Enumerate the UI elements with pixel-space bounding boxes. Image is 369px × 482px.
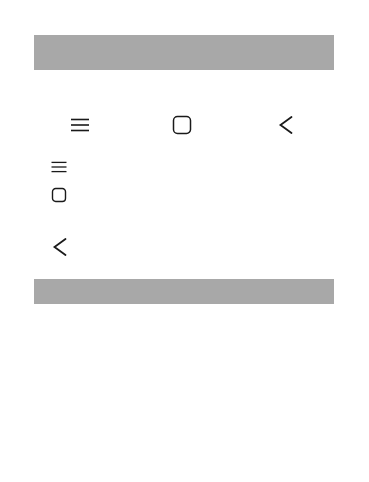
button[interactable]: Menu	[45, 155, 73, 179]
button[interactable]: Back	[46, 233, 74, 261]
button[interactable]: Menu	[64, 111, 96, 139]
button[interactable]: Stop	[45, 183, 73, 207]
button[interactable]: Back	[272, 111, 300, 139]
button[interactable]: Stop	[167, 111, 197, 139]
